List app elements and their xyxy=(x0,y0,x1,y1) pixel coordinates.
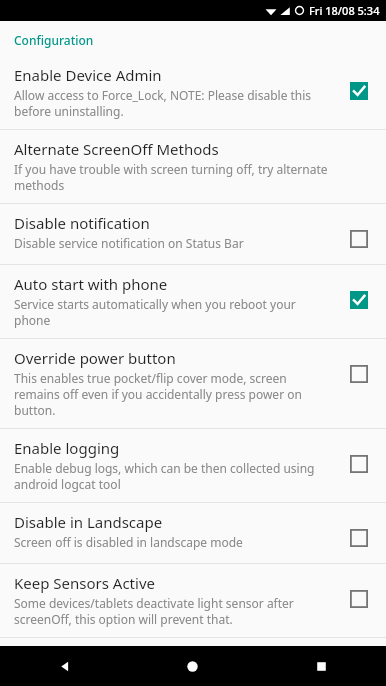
button[interactable]: Toggle Enable logging xyxy=(344,449,374,479)
staticText: Keep Sensors Active xyxy=(14,573,155,593)
staticText: If you have trouble with screen turning … xyxy=(14,161,334,193)
staticText: Disable in Landscape xyxy=(14,512,163,532)
staticText: Override power button xyxy=(14,348,176,368)
staticText: Screen off is disabled in landscape mode xyxy=(14,534,243,550)
button[interactable]: Enable Device Admin xyxy=(0,56,386,129)
staticText: Disable service notification on Status B… xyxy=(14,235,244,251)
button[interactable]: Enable logging xyxy=(0,429,386,502)
button[interactable]: Back xyxy=(0,646,128,686)
button[interactable]: Recent apps xyxy=(257,646,386,686)
staticText: Allow access to Force_Lock, NOTE: Please… xyxy=(14,87,334,119)
button[interactable]: Home xyxy=(128,646,257,686)
staticText: Enable logging xyxy=(14,438,120,458)
staticText: Enable debug logs, which can be then col… xyxy=(14,460,334,492)
staticText: Service starts automatically when you re… xyxy=(14,296,334,328)
button[interactable]: Alternate ScreenOff Methods xyxy=(0,130,386,203)
staticText: Disable notification xyxy=(14,213,150,233)
button[interactable]: Toggle Auto start with phone xyxy=(344,285,374,315)
button[interactable]: Toggle Enable Device Admin xyxy=(344,76,374,106)
staticText: This enables true pocket/flip cover mode… xyxy=(14,370,334,418)
staticText: Fri 18/08 5:34 xyxy=(309,3,380,18)
button[interactable]: Keep Sensors Active xyxy=(0,564,386,637)
button[interactable]: Auto start with phone xyxy=(0,265,386,338)
button[interactable]: Toggle Disable notification xyxy=(344,224,374,254)
button[interactable]: Override power button xyxy=(0,339,386,428)
button[interactable]: Toggle Disable in Landscape xyxy=(344,523,374,553)
staticText: Enable Device Admin xyxy=(14,65,162,85)
button[interactable]: Disable in Landscape xyxy=(0,503,386,563)
staticText: Configuration xyxy=(14,32,94,48)
staticText: Alternate ScreenOff Methods xyxy=(14,139,219,159)
button[interactable]: Disable notification xyxy=(0,204,386,264)
button[interactable]: Toggle Override power button xyxy=(344,359,374,389)
staticText: Auto start with phone xyxy=(14,274,168,294)
button[interactable]: Toggle Keep Sensors Active xyxy=(344,584,374,614)
staticText: Some devices/tablets deactivate light se… xyxy=(14,595,334,627)
